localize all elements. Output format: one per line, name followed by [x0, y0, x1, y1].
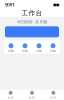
staticText: 功能: [22, 49, 28, 53]
staticText: 今日待办 共 8 项: [17, 19, 47, 24]
staticText: ●●: [53, 2, 59, 7]
staticText: 功能: [36, 49, 42, 53]
staticText: 工作台: [21, 9, 42, 17]
staticText: 标签: [50, 96, 56, 99]
staticText: 标签: [8, 96, 14, 99]
staticText: 功能: [50, 49, 56, 53]
staticText: 9:41: [5, 1, 15, 8]
staticText: 功能: [8, 49, 14, 53]
staticText: 标签: [29, 96, 35, 99]
